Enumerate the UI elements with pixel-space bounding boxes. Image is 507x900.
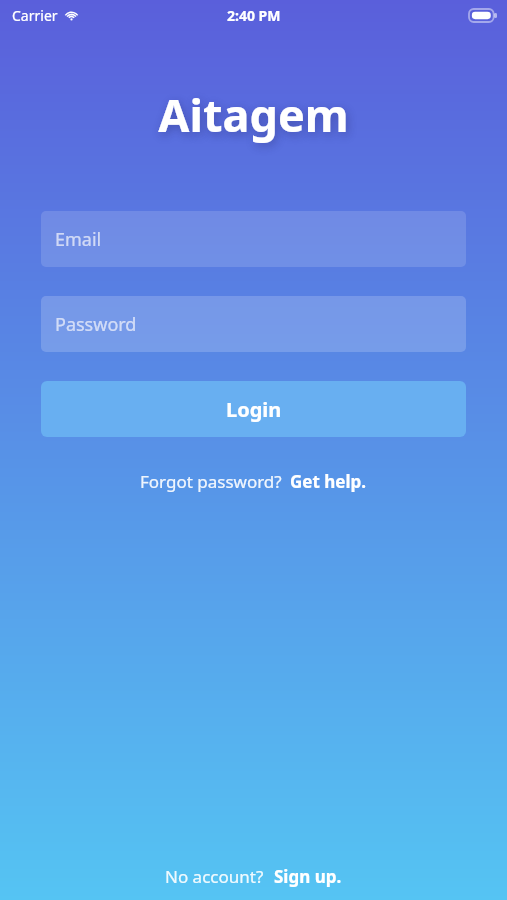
button[interactable]: Password	[41, 296, 466, 352]
staticText: Carrier	[12, 6, 58, 25]
staticText: Forgot password?	[140, 470, 282, 493]
staticText: 2:40 PM	[227, 6, 281, 25]
staticText: Email	[55, 227, 102, 252]
staticText: Password	[55, 312, 137, 337]
button[interactable]: Forgot password?	[134, 466, 373, 497]
button[interactable]: Login	[41, 381, 466, 437]
staticText: Get help.	[290, 470, 367, 493]
staticText: No account?	[165, 865, 264, 888]
staticText: Sign up.	[274, 865, 342, 888]
staticText: Login	[226, 396, 282, 423]
staticText: Aitagem	[158, 84, 349, 145]
other: Wi-Fi signal	[64, 8, 79, 23]
button[interactable]: Email	[41, 211, 466, 267]
other: Battery full	[469, 9, 497, 22]
button[interactable]: No account?	[159, 861, 348, 892]
